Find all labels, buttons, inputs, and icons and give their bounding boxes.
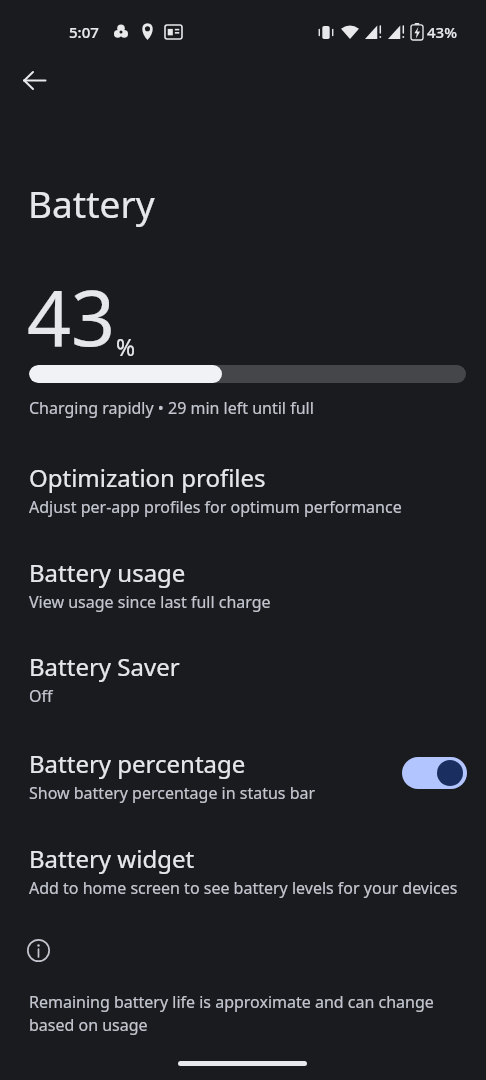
staticText: Battery usage bbox=[29, 556, 186, 589]
staticText: Charging rapidly • 29 min left until ful… bbox=[29, 397, 314, 419]
staticText: Off bbox=[29, 685, 53, 707]
button[interactable]: Back bbox=[11, 57, 57, 103]
staticText: Battery widget bbox=[29, 842, 195, 875]
button[interactable]: Battery widget bbox=[0, 833, 486, 919]
staticText: Battery percentage bbox=[29, 747, 246, 780]
staticText: Add to home screen to see battery levels… bbox=[29, 877, 458, 899]
staticText: Show battery percentage in status bar bbox=[29, 782, 316, 804]
button[interactable]: Battery usage bbox=[0, 547, 486, 633]
staticText: View usage since last full charge bbox=[29, 591, 271, 613]
staticText: Adjust per-app profiles for optimum perf… bbox=[29, 496, 402, 518]
staticText: % bbox=[116, 331, 136, 362]
staticText: 43% bbox=[427, 22, 457, 42]
button[interactable]: Battery percentage bbox=[0, 738, 486, 824]
staticText: Remaining battery life is approximate an… bbox=[29, 991, 434, 1036]
button[interactable]: Optimization profiles bbox=[0, 452, 486, 538]
staticText: Battery bbox=[28, 178, 155, 228]
button[interactable]: Battery Saver bbox=[0, 641, 486, 727]
staticText: Battery Saver bbox=[29, 650, 180, 683]
staticText: Optimization profiles bbox=[29, 461, 266, 494]
staticText: 43 bbox=[27, 264, 116, 369]
staticText: 5:07 bbox=[69, 22, 99, 42]
